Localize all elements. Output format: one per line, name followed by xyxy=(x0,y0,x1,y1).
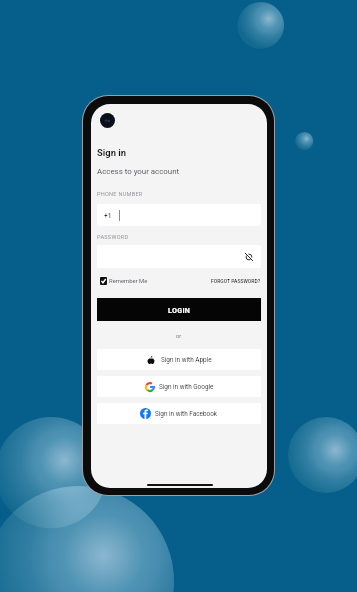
staticText: Remember Me xyxy=(109,278,148,285)
staticText: PASSWORD xyxy=(97,234,129,241)
button[interactable]: FORGOT PASSWORD? xyxy=(211,278,261,284)
staticText: Sign in with Google xyxy=(159,383,214,391)
button[interactable]: Sign in with Facebook xyxy=(97,403,261,424)
staticText: LOGIN xyxy=(168,306,191,314)
button[interactable]: Remember Me xyxy=(97,277,148,285)
staticText: PHONE NUMBER xyxy=(97,191,143,198)
button[interactable]: +1 xyxy=(97,204,261,226)
button[interactable]: Show password xyxy=(97,245,261,268)
button[interactable]: LOGIN xyxy=(97,298,261,321)
staticText: +1 xyxy=(104,212,112,220)
staticText: Sign in xyxy=(97,147,126,158)
button[interactable]: Show password xyxy=(245,253,253,261)
button[interactable]: Sign in with Google xyxy=(97,376,261,397)
staticText: Sign in with Facebook xyxy=(155,410,218,418)
staticText: or xyxy=(176,333,182,340)
staticText: Sign in with Apple xyxy=(161,356,212,364)
button[interactable]: Sign in with Apple xyxy=(97,349,261,370)
staticText: Access to your account xyxy=(97,167,180,176)
